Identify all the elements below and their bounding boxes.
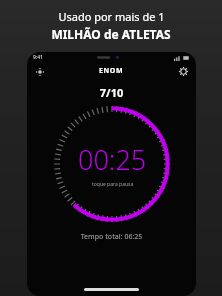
staticText: 7/10 bbox=[27, 85, 196, 100]
staticText: 00:25 bbox=[78, 141, 147, 178]
button[interactable]: Menu bbox=[33, 65, 46, 78]
staticText: ENOM bbox=[99, 66, 124, 76]
staticText: 9:41 bbox=[33, 54, 43, 61]
staticText: toque para pausa bbox=[92, 181, 134, 188]
button[interactable]: Settings bbox=[177, 65, 190, 78]
staticText: MILHÃO de ATLETAS bbox=[51, 26, 171, 42]
button[interactable]: 00:25 bbox=[54, 106, 170, 222]
staticText: Usado por mais de 1 bbox=[58, 9, 165, 24]
staticText: Tempo total: 06:25 bbox=[27, 232, 196, 242]
